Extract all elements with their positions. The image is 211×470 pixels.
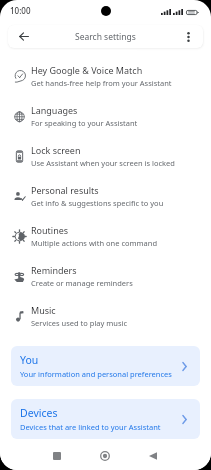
button[interactable]: Home bbox=[95, 446, 115, 466]
staticText: Languages bbox=[31, 104, 78, 116]
staticText: Devices that are linked to your Assistan… bbox=[20, 422, 161, 432]
button[interactable]: Back bbox=[12, 25, 36, 48]
staticText: Routines bbox=[31, 224, 69, 236]
staticText: Services used to play music bbox=[31, 318, 128, 328]
button[interactable]: Devices bbox=[11, 399, 200, 439]
button[interactable]: Languages bbox=[0, 96, 211, 136]
button[interactable]: Music bbox=[0, 296, 211, 336]
staticText: Reminders bbox=[31, 264, 77, 276]
staticText: Hey Google & Voice Match bbox=[31, 64, 143, 76]
staticText: You bbox=[20, 353, 39, 367]
button[interactable]: Lock screen bbox=[0, 136, 211, 176]
staticText: Multiple actions with one command bbox=[31, 238, 157, 248]
button[interactable]: Personal results bbox=[0, 176, 211, 216]
button[interactable]: Hey Google & Voice Match bbox=[0, 56, 211, 96]
staticText: Search settings bbox=[75, 31, 136, 43]
staticText: For speaking to your Assistant bbox=[31, 118, 138, 128]
staticText: Get hands-free help from your Assistant bbox=[31, 78, 172, 88]
button[interactable]: Recents bbox=[47, 446, 67, 466]
staticText: Devices bbox=[20, 406, 58, 420]
staticText: Create or manage reminders bbox=[31, 278, 133, 288]
staticText: Get info & suggestions specific to you bbox=[31, 198, 164, 208]
staticText: Use Assistant when your screen is locked bbox=[31, 158, 175, 168]
staticText: Lock screen bbox=[31, 144, 81, 156]
button[interactable]: Routines bbox=[0, 216, 211, 256]
staticText: Your information and personal preference… bbox=[20, 369, 172, 379]
button[interactable]: Reminders bbox=[0, 256, 211, 296]
button[interactable]: More options bbox=[177, 26, 199, 48]
staticText: Music bbox=[31, 304, 56, 316]
button[interactable]: You bbox=[11, 346, 200, 386]
button[interactable]: Back bbox=[144, 446, 164, 466]
staticText: 10:00 bbox=[10, 5, 31, 16]
staticText: Personal results bbox=[31, 184, 99, 196]
